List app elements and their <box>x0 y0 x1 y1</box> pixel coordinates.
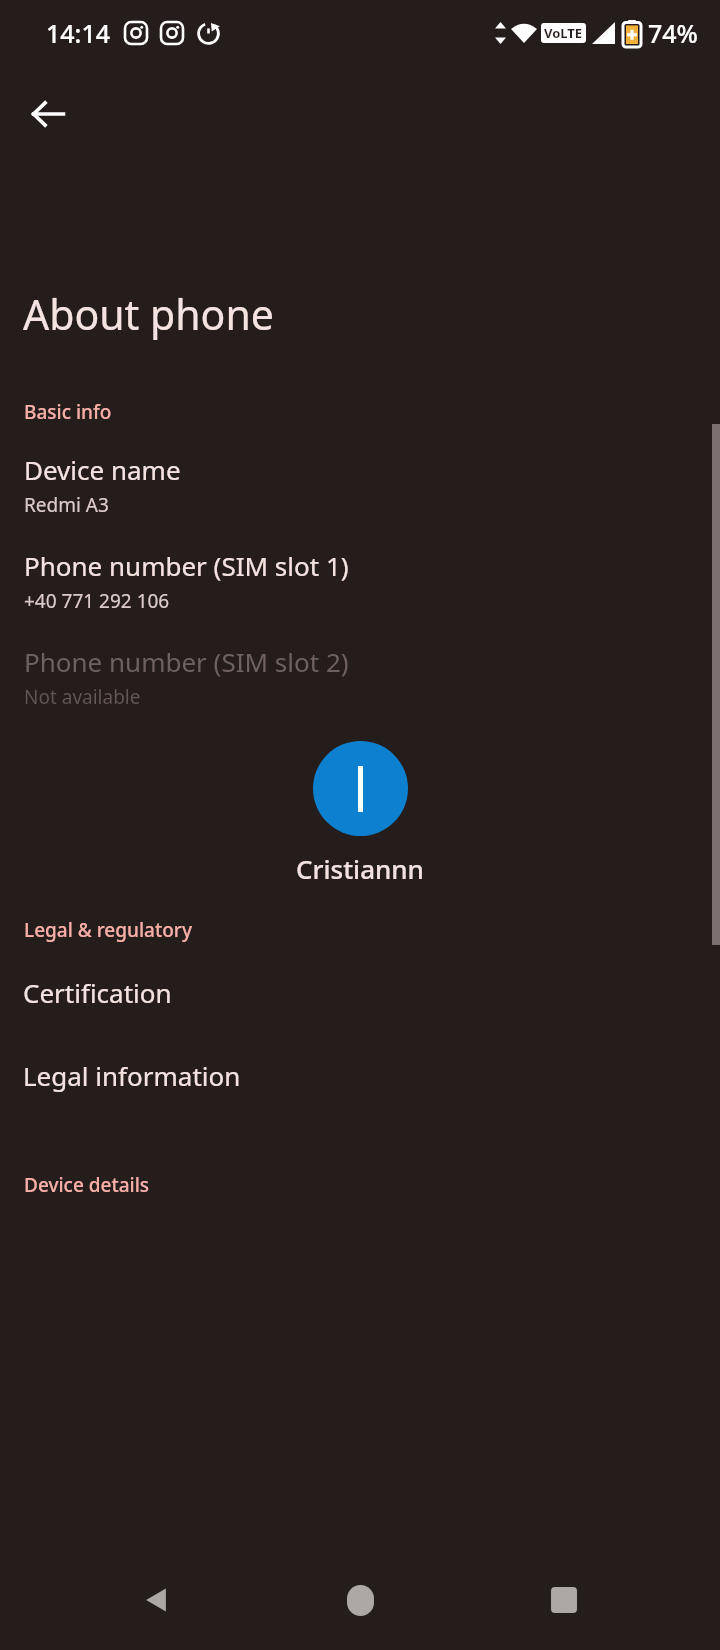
staticText: Not available <box>24 684 141 710</box>
button[interactable]: Phone number (SIM slot 1) <box>0 546 720 616</box>
staticText: Cristiannn <box>296 851 424 886</box>
button[interactable]: Phone number (SIM slot 2) <box>0 642 720 712</box>
button[interactable]: Device name <box>0 450 720 520</box>
button[interactable]: Back <box>0 66 96 162</box>
button[interactable]: Cristiannn <box>0 741 720 886</box>
staticText: About phone <box>23 286 274 342</box>
staticText: Phone number (SIM slot 2) <box>24 644 349 679</box>
staticText: Certification <box>23 975 172 1010</box>
button[interactable]: Recents <box>516 1552 612 1648</box>
button[interactable]: Certification <box>0 971 720 1014</box>
button[interactable]: Home <box>312 1552 408 1648</box>
staticText: +40 771 292 106 <box>24 588 170 614</box>
button[interactable]: Back <box>108 1552 204 1648</box>
staticText: 74% <box>648 16 698 50</box>
staticText: Legal information <box>23 1058 241 1093</box>
staticText: Basic info <box>24 399 112 425</box>
staticText: Legal & regulatory <box>24 917 192 943</box>
staticText: Redmi A3 <box>24 492 109 518</box>
staticText: Device name <box>24 452 181 487</box>
staticText: VoLTE <box>544 24 583 42</box>
staticText: 14:14 <box>46 16 111 50</box>
staticText: Device details <box>24 1172 150 1198</box>
staticText: Phone number (SIM slot 1) <box>24 548 349 583</box>
button[interactable]: Legal information <box>0 1054 720 1097</box>
